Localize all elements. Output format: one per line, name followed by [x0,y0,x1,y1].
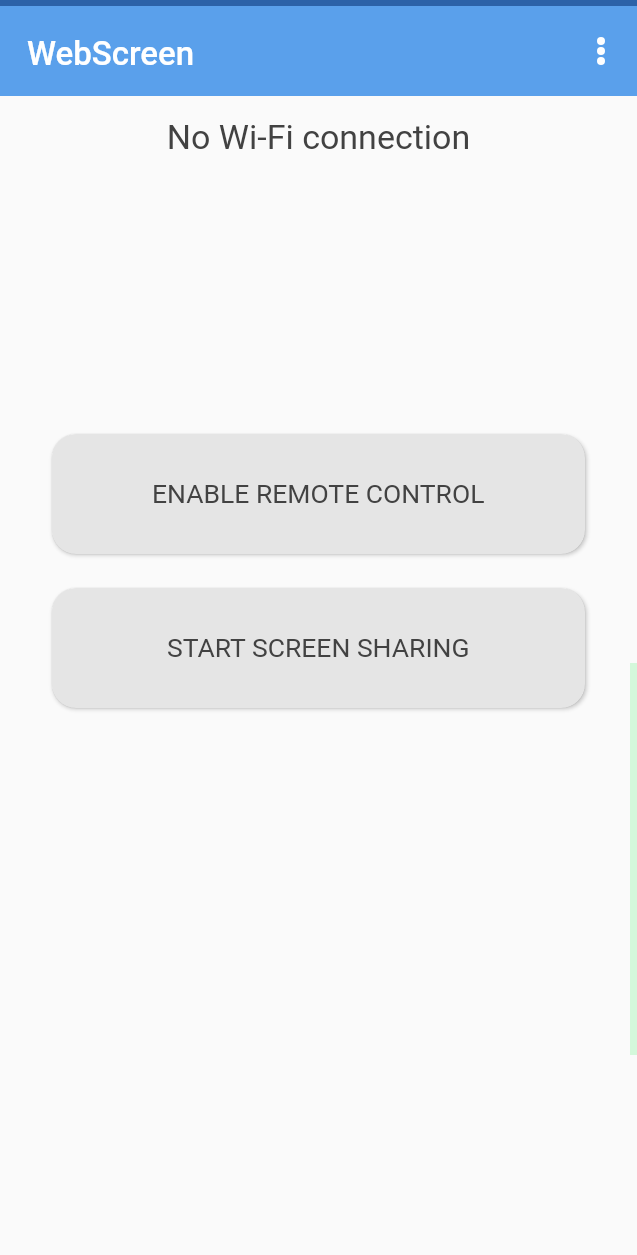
staticText: WebScreen [27,34,195,73]
button[interactable]: More options [565,15,637,87]
staticText: ENABLE REMOTE CONTROL [152,478,485,509]
button[interactable]: ENABLE REMOTE CONTROL [52,434,585,554]
button[interactable]: START SCREEN SHARING [52,588,585,708]
staticText: START SCREEN SHARING [167,632,470,663]
staticText: No Wi-Fi connection [0,117,637,157]
